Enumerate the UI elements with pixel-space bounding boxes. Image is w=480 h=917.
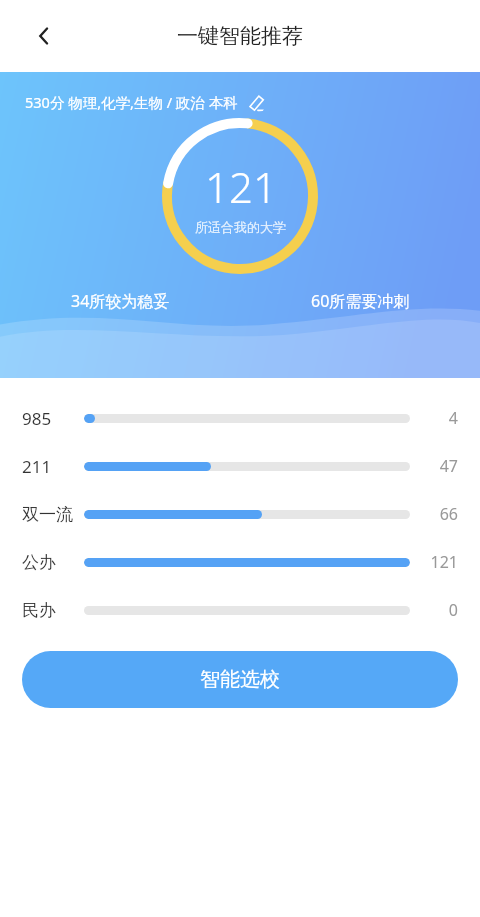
staticText: 民办 [22,600,56,621]
staticText: 530分 物理,化学,生物 / 政治 本科 [25,92,238,112]
staticText: 0 [448,599,458,621]
staticText: 121 [430,551,458,573]
button[interactable]: 211 [0,442,480,490]
button[interactable]: 60所需要冲刺 [311,290,410,312]
staticText: 121 [205,158,277,215]
staticText: 211 [22,455,52,478]
button[interactable]: Back [22,14,66,58]
staticText: 公办 [22,552,56,573]
button[interactable]: 985 [0,394,480,442]
other: Edit [248,94,265,111]
staticText: 66 [439,503,458,525]
button[interactable]: 双一流 [0,490,480,538]
button[interactable]: 530分 物理,化学,生物 / 政治 本科 [25,92,265,112]
staticText: 985 [22,407,52,430]
staticText: 智能选校 [200,667,280,692]
button[interactable]: 智能选校 [22,651,458,708]
staticText: 4 [448,407,458,429]
button[interactable]: 公办 [0,538,480,586]
staticText: 一键智能推荐 [177,23,303,49]
staticText: 所适合我的大学 [195,219,286,235]
button[interactable]: 34所较为稳妥 [71,290,170,312]
staticText: 47 [439,455,458,477]
staticText: 双一流 [22,504,73,525]
button[interactable]: 民办 [0,586,480,634]
